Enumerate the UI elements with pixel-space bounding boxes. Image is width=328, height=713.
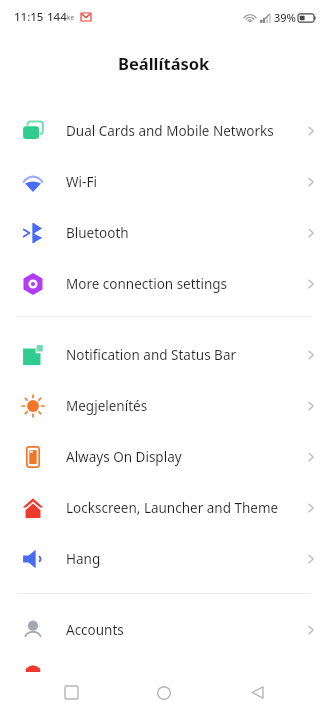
staticText: Always On Display (66, 448, 294, 466)
staticText: ke (67, 13, 75, 22)
staticText: Bluetooth (66, 224, 294, 242)
staticText: Megjelenítés (66, 397, 294, 415)
button[interactable]: Lockscreen, Launcher and Theme (0, 482, 328, 533)
button[interactable]: Always On Display (0, 431, 328, 482)
button[interactable] (0, 655, 328, 672)
staticText: More connection settings (66, 275, 294, 293)
button[interactable]: Megjelenítés (0, 380, 328, 431)
staticText: 11:15 (14, 9, 44, 25)
staticText: Notification and Status Bar (66, 346, 294, 364)
staticText: Beállítások (118, 52, 210, 74)
staticText: 39% (274, 10, 296, 25)
button[interactable]: Home (142, 672, 186, 713)
button[interactable]: Hang (0, 533, 328, 584)
button[interactable]: Bluetooth (0, 207, 328, 258)
button[interactable]: Recent apps (49, 672, 93, 713)
staticText: Lockscreen, Launcher and Theme (66, 499, 294, 517)
staticText: Dual Cards and Mobile Networks (66, 122, 294, 140)
staticText: Hang (66, 550, 294, 568)
button[interactable]: Wi-Fi (0, 156, 328, 207)
button[interactable]: Back (235, 672, 279, 713)
staticText: Accounts (66, 621, 294, 639)
button[interactable]: Notification and Status Bar (0, 329, 328, 380)
button[interactable]: Accounts (0, 604, 328, 655)
button[interactable]: More connection settings (0, 258, 328, 309)
staticText: 144 (47, 9, 67, 25)
button[interactable]: Dual Cards and Mobile Networks (0, 105, 328, 156)
staticText: Wi-Fi (66, 173, 294, 191)
